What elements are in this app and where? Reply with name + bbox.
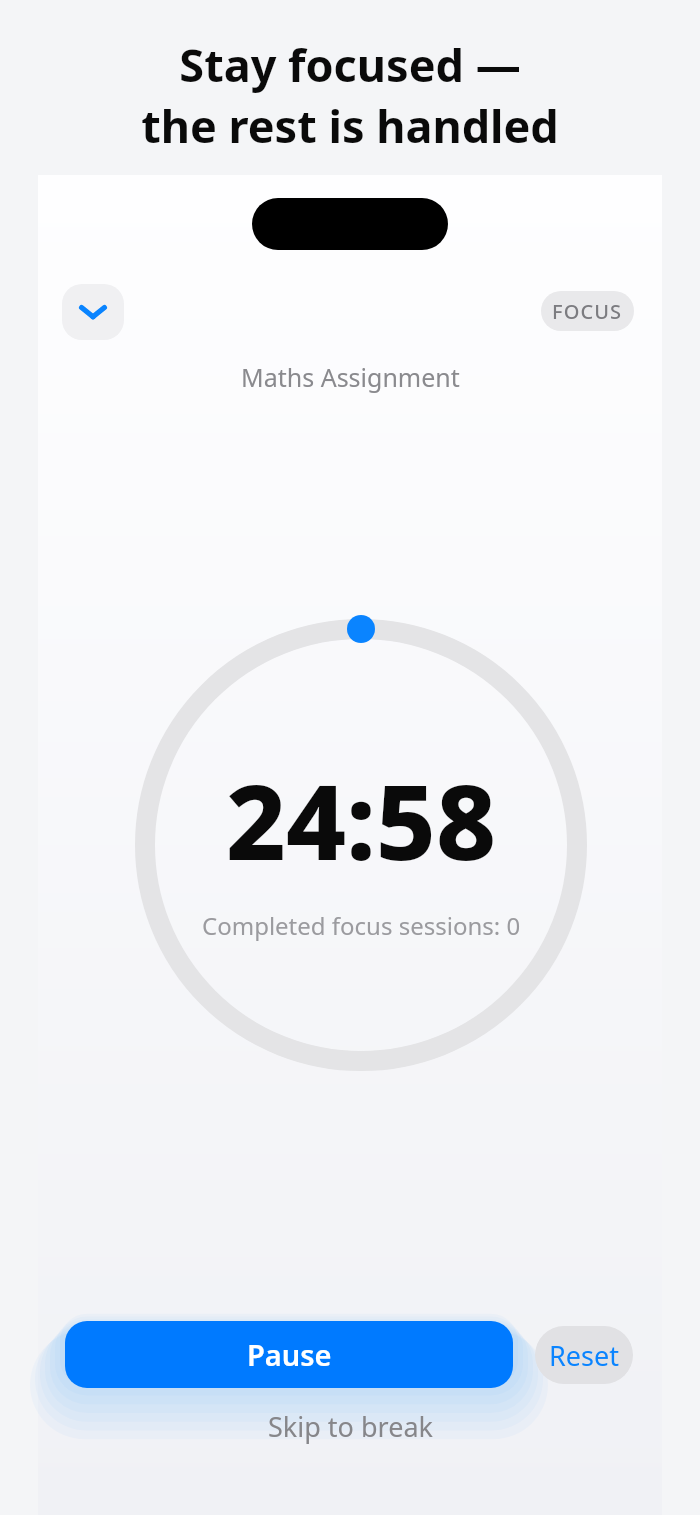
staticText: Maths Assignment: [241, 360, 460, 394]
button[interactable]: Collapse: [62, 284, 124, 340]
staticText: 24:58: [226, 749, 497, 891]
staticText: Pause: [247, 1335, 332, 1374]
staticText: the rest is handled: [141, 95, 559, 156]
button[interactable]: Pause: [65, 1321, 513, 1388]
staticText: Skip to break: [268, 1408, 433, 1445]
button[interactable]: FOCUS: [541, 291, 634, 331]
staticText: Stay focused —: [179, 34, 521, 95]
staticText: Reset: [549, 1337, 619, 1374]
staticText: Completed focus sessions: 0: [202, 909, 521, 942]
staticText: FOCUS: [552, 298, 623, 325]
button[interactable]: Skip to break: [258, 1404, 443, 1449]
button[interactable]: Reset: [535, 1326, 633, 1384]
